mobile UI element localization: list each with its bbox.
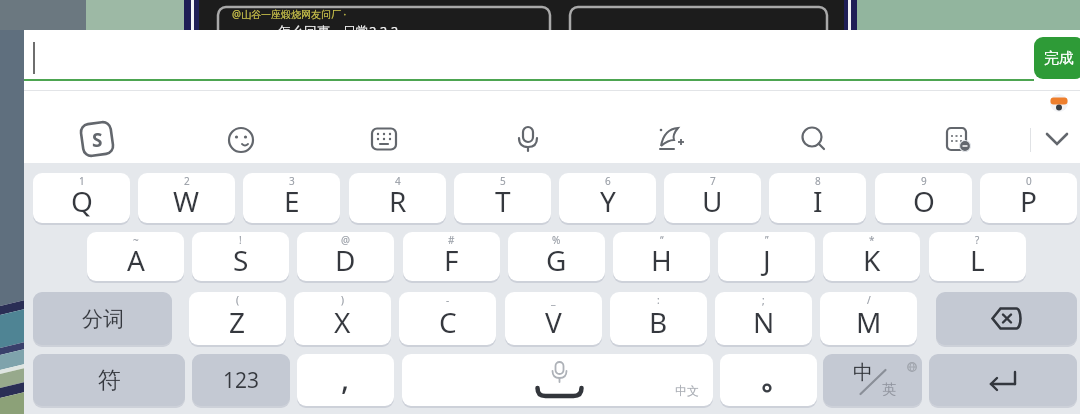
button[interactable]: @ xyxy=(297,232,394,281)
staticText: Y xyxy=(600,182,616,220)
staticText: 123 xyxy=(223,366,260,395)
button[interactable]: 中文 xyxy=(402,354,713,406)
staticText: C xyxy=(439,303,457,341)
staticText: ” xyxy=(765,233,769,247)
button[interactable] xyxy=(219,118,263,162)
staticText: L xyxy=(970,241,985,279)
button[interactable]: 2 xyxy=(138,173,235,223)
staticText: V xyxy=(545,303,562,341)
staticText: D xyxy=(335,241,356,279)
staticText: T xyxy=(495,182,511,220)
button[interactable]: - xyxy=(399,292,496,345)
staticText: ; xyxy=(762,293,765,307)
button[interactable]: 9 xyxy=(875,173,972,223)
staticText: 中 xyxy=(853,360,873,385)
staticText: @ xyxy=(341,233,350,247)
button[interactable]: : xyxy=(610,292,707,345)
staticText: 0 xyxy=(1026,174,1032,188)
button[interactable]: # xyxy=(403,232,500,281)
staticText: ? xyxy=(975,233,980,247)
staticText: M xyxy=(856,303,882,341)
button[interactable]: 8 xyxy=(769,173,866,223)
staticText: 4 xyxy=(395,174,401,188)
staticText: H xyxy=(651,241,672,279)
staticText: _ xyxy=(551,293,556,307)
button[interactable] xyxy=(929,354,1077,406)
staticText: Q xyxy=(71,182,93,220)
staticText: 怎么回事，日常2 2 2 xyxy=(278,22,399,30)
staticText: * xyxy=(869,233,875,247)
staticText: - xyxy=(446,293,450,307)
staticText: S xyxy=(233,241,249,279)
staticText: 9 xyxy=(921,174,927,188)
button[interactable]: 分词 xyxy=(33,292,172,345)
button[interactable] xyxy=(792,117,836,161)
button[interactable]: ” xyxy=(718,232,815,281)
staticText: @山谷一座煅烧网友问厂 · xyxy=(232,7,347,21)
staticText: W xyxy=(173,182,200,220)
staticText: J xyxy=(763,241,771,279)
button[interactable]: 123 xyxy=(192,354,290,406)
button[interactable] xyxy=(936,292,1077,345)
button[interactable]: * xyxy=(823,232,920,281)
staticText: F xyxy=(444,241,459,279)
staticText: P xyxy=(1020,182,1037,220)
staticText: , xyxy=(341,358,350,399)
button[interactable] xyxy=(362,117,406,161)
staticText: U xyxy=(702,182,723,220)
button[interactable]: 6 xyxy=(559,173,656,223)
staticText: I xyxy=(813,182,823,220)
staticText: % xyxy=(552,233,561,247)
staticText: O xyxy=(913,182,935,220)
staticText: 英 xyxy=(882,381,896,399)
staticText: S xyxy=(92,127,103,153)
button[interactable] xyxy=(506,117,550,161)
button[interactable] xyxy=(1050,94,1068,112)
button[interactable]: 7 xyxy=(664,173,761,223)
staticText: ) xyxy=(341,293,344,307)
staticText: 1 xyxy=(79,174,85,188)
button[interactable]: 1 xyxy=(33,173,130,223)
button[interactable]: 3 xyxy=(243,173,340,223)
button[interactable]: / xyxy=(820,292,917,345)
staticText: 3 xyxy=(289,174,295,188)
button[interactable] xyxy=(934,117,978,161)
button[interactable]: % xyxy=(508,232,605,281)
staticText: ( xyxy=(236,293,239,307)
staticText: 7 xyxy=(710,174,716,188)
staticText: B xyxy=(649,303,668,341)
button[interactable] xyxy=(75,117,119,161)
button[interactable]: 符 xyxy=(33,354,185,406)
staticText: 符 xyxy=(98,366,121,395)
staticText: N xyxy=(753,303,775,341)
staticText: 2 xyxy=(184,174,190,188)
button[interactable]: ; xyxy=(715,292,812,345)
button[interactable]: ~ xyxy=(87,232,184,281)
staticText: 完成 xyxy=(1044,49,1074,68)
button[interactable]: ( xyxy=(189,292,286,345)
staticText: # xyxy=(448,233,455,247)
button[interactable]: “ xyxy=(613,232,710,281)
button[interactable]: 完成 xyxy=(1034,37,1080,79)
staticText: 5 xyxy=(500,174,506,188)
staticText: K xyxy=(863,241,881,279)
button[interactable]: ! xyxy=(192,232,289,281)
button[interactable] xyxy=(720,354,817,406)
button[interactable]: ? xyxy=(929,232,1026,281)
button[interactable]: 5 xyxy=(454,173,551,223)
staticText: 分词 xyxy=(82,306,124,332)
staticText: “ xyxy=(660,233,664,247)
staticText: : xyxy=(657,293,660,307)
button[interactable]: _ xyxy=(505,292,602,345)
button[interactable] xyxy=(1035,117,1079,161)
staticText: 8 xyxy=(815,174,821,188)
staticText: 中文 xyxy=(675,383,699,398)
staticText: ! xyxy=(239,233,242,247)
button[interactable]: , xyxy=(297,354,394,406)
button[interactable]: 中 xyxy=(823,354,922,406)
button[interactable]: 4 xyxy=(349,173,446,223)
button[interactable] xyxy=(648,117,692,161)
button[interactable]: 0 xyxy=(980,173,1077,223)
staticText: G xyxy=(546,241,567,279)
button[interactable]: ) xyxy=(294,292,391,345)
